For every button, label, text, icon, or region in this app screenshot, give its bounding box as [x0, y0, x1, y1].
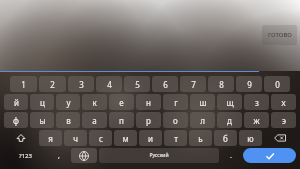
staticText: т [174, 133, 178, 144]
button[interactable]: а [82, 112, 107, 128]
staticText: м [122, 133, 129, 144]
staticText: ц [40, 97, 45, 108]
button[interactable]: Enter [243, 148, 296, 163]
staticText: в [66, 115, 71, 126]
staticText: г [174, 97, 178, 108]
staticText: ь [198, 133, 203, 144]
button[interactable]: 0 [264, 76, 290, 92]
staticText: щ [226, 97, 234, 108]
button[interactable]: ф [4, 112, 28, 128]
button[interactable]: ы [30, 112, 54, 128]
button[interactable]: е [109, 94, 134, 110]
button[interactable]: г [163, 94, 188, 110]
staticText: 6 [163, 79, 168, 90]
staticText: к [92, 97, 97, 108]
staticText: д [227, 115, 232, 126]
button[interactable]: х [271, 94, 296, 110]
button[interactable]: и [139, 130, 162, 146]
button[interactable]: ю [239, 130, 262, 146]
staticText: е [119, 97, 124, 108]
button[interactable]: 4 [96, 76, 122, 92]
button[interactable]: ГОТОВО [262, 25, 297, 45]
button[interactable]: т [164, 130, 187, 146]
staticText: а [92, 115, 97, 126]
button[interactable]: р [136, 112, 161, 128]
button[interactable]: в [56, 112, 80, 128]
button[interactable]: 7 [180, 76, 206, 92]
button[interactable]: л [190, 112, 215, 128]
button[interactable]: б [214, 130, 237, 146]
button[interactable]: я [39, 130, 62, 146]
staticText: 9 [247, 79, 252, 90]
staticText: х [281, 97, 286, 108]
button[interactable]: ь [189, 130, 212, 146]
staticText: 8 [219, 79, 224, 90]
staticText: ф [13, 115, 19, 126]
button[interactable]: э [271, 112, 296, 128]
staticText: 1 [21, 79, 26, 90]
staticText: з [255, 97, 259, 108]
staticText: ж [253, 115, 260, 126]
staticText: б [223, 133, 228, 144]
button[interactable]: у [56, 94, 80, 110]
staticText: п [119, 115, 124, 126]
button[interactable]: к [82, 94, 107, 110]
staticText: Русский [149, 152, 169, 159]
staticText: 4 [107, 79, 112, 90]
staticText: о [173, 115, 178, 126]
staticText: 5 [135, 79, 140, 90]
staticText: 7 [191, 79, 196, 90]
staticText: ы [39, 115, 46, 126]
button[interactable]: 6 [152, 76, 178, 92]
button[interactable]: 3 [68, 76, 94, 92]
button[interactable]: п [109, 112, 134, 128]
staticText: э [282, 115, 286, 126]
staticText: 2 [50, 79, 55, 90]
staticText: ю [247, 133, 254, 144]
button[interactable]: ?123 [4, 148, 47, 163]
staticText: . [230, 151, 232, 161]
button[interactable]: й [4, 94, 28, 110]
button[interactable]: 5 [124, 76, 150, 92]
staticText: ?123 [19, 152, 32, 160]
button[interactable]: з [244, 94, 269, 110]
staticText: р [146, 115, 151, 126]
button[interactable]: щ [217, 94, 242, 110]
staticText: ч [73, 133, 78, 144]
button[interactable]: Change language [71, 148, 97, 163]
button[interactable]: 8 [208, 76, 234, 92]
staticText: , [58, 151, 60, 161]
staticText: 3 [79, 79, 84, 90]
button[interactable]: Backspace [264, 130, 296, 146]
button[interactable]: н [136, 94, 161, 110]
button[interactable]: о [163, 112, 188, 128]
staticText: л [200, 115, 205, 126]
staticText: н [146, 97, 151, 108]
staticText: 0 [275, 79, 280, 90]
button[interactable]: Русский [99, 148, 219, 163]
button[interactable]: 9 [236, 76, 262, 92]
button[interactable]: ц [30, 94, 54, 110]
button[interactable]: , [49, 148, 69, 163]
staticText: с [99, 133, 103, 144]
staticText: ГОТОВО [268, 31, 292, 39]
button[interactable]: ш [190, 94, 215, 110]
button[interactable]: 1 [10, 76, 37, 92]
button[interactable]: м [114, 130, 137, 146]
staticText: ш [199, 97, 207, 108]
button[interactable]: ч [64, 130, 87, 146]
button[interactable]: ж [244, 112, 269, 128]
button[interactable]: с [89, 130, 112, 146]
staticText: я [48, 133, 53, 144]
button[interactable]: 2 [39, 76, 66, 92]
staticText: и [148, 133, 153, 144]
staticText: у [66, 97, 71, 108]
button[interactable]: Shift [4, 130, 37, 146]
button[interactable]: . [221, 148, 241, 163]
staticText: й [14, 97, 19, 108]
button[interactable]: д [217, 112, 242, 128]
